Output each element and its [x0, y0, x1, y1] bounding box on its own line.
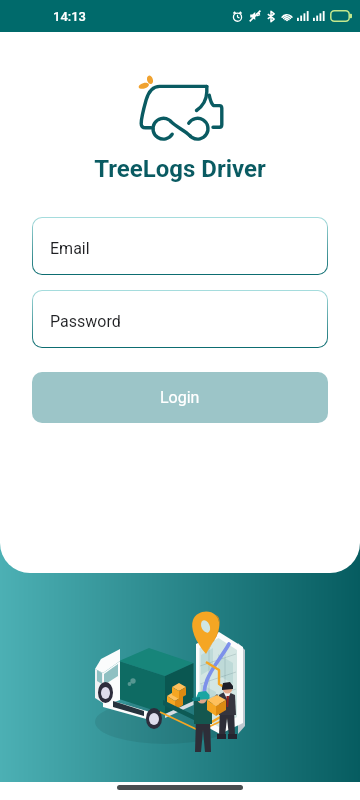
staticText: Email	[50, 239, 90, 258]
button[interactable]: Login	[32, 372, 328, 423]
staticText: Password	[50, 312, 121, 331]
button[interactable]: Email	[33, 218, 327, 274]
staticText: Login	[160, 388, 200, 407]
button[interactable]: Password	[33, 291, 327, 347]
staticText: 14:13	[53, 9, 86, 24]
staticText: TreeLogs Driver	[0, 155, 360, 183]
